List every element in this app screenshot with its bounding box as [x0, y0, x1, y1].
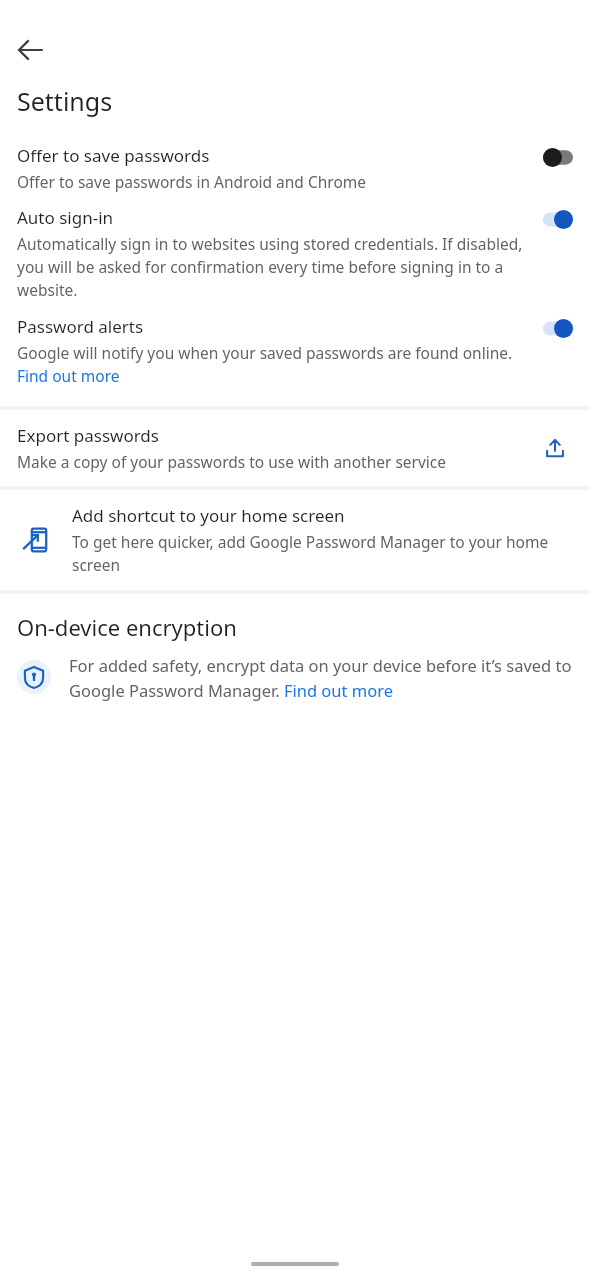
staticText: Google will notify you when your saved p…: [17, 342, 531, 387]
button[interactable]: For added safety, encrypt data on your d…: [0, 654, 590, 701]
button[interactable]: Auto sign-in: [0, 198, 590, 307]
staticText: Export passwords: [17, 424, 159, 447]
button[interactable]: Back: [10, 30, 50, 70]
staticText: Password alerts: [17, 315, 144, 338]
staticText: Automatically sign in to websites using …: [17, 233, 531, 301]
staticText: Add shortcut to your home screen: [72, 504, 345, 527]
button[interactable]: Export passwords: [0, 410, 590, 486]
staticText: To get here quicker, add Google Password…: [72, 531, 573, 576]
staticText: Settings: [17, 84, 113, 118]
button[interactable]: Offer to save passwords: [0, 136, 590, 198]
staticText: Offer to save passwords: [17, 144, 210, 167]
button[interactable]: Offer to save passwords off: [543, 148, 573, 167]
button[interactable]: Add shortcut to your home screen: [0, 490, 590, 590]
staticText: Offer to save passwords in Android and C…: [17, 171, 366, 192]
staticText: On-device encryption: [17, 612, 237, 642]
staticText: For added safety, encrypt data on your d…: [69, 654, 573, 701]
button[interactable]: Password alerts on: [543, 319, 573, 338]
staticText: Auto sign-in: [17, 206, 114, 229]
button[interactable]: Auto sign-in on: [543, 210, 573, 229]
button[interactable]: Password alerts: [0, 307, 590, 393]
staticText: Make a copy of your passwords to use wit…: [17, 451, 447, 472]
